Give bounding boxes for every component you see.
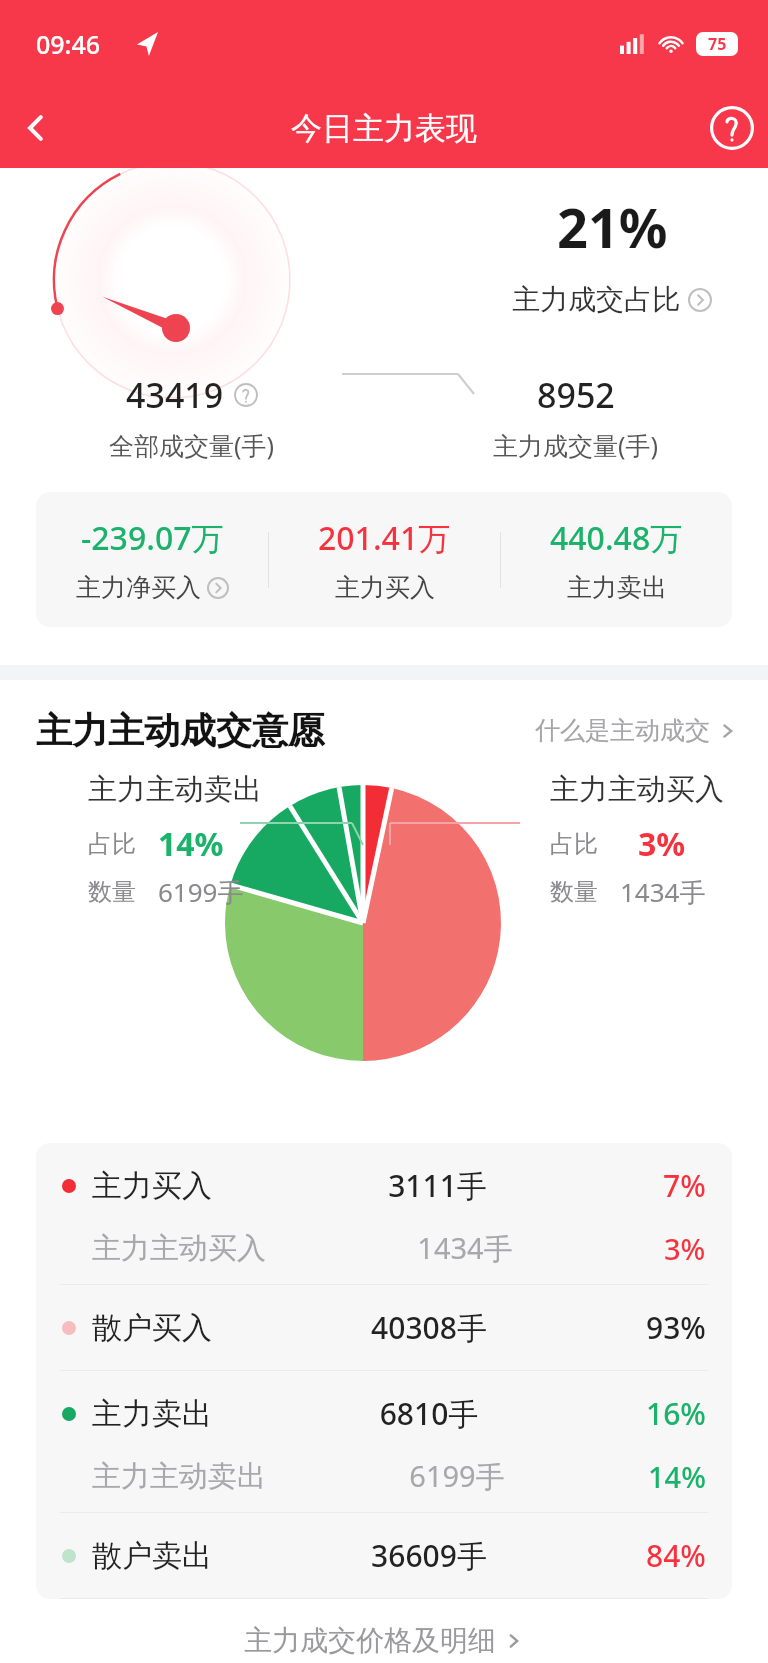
- staticText: 今日主力表现: [291, 109, 477, 148]
- button[interactable]: 主力成交占比: [512, 282, 712, 317]
- staticText: 主力主动买入: [92, 1230, 266, 1267]
- staticText: 7%: [663, 1165, 706, 1206]
- button[interactable]: 散户买入: [36, 1285, 732, 1370]
- staticText: 440.48万: [550, 516, 683, 560]
- staticText: 16%: [646, 1393, 706, 1434]
- staticText: 6199手: [266, 1456, 648, 1496]
- staticText: 全部成交量(手): [109, 428, 275, 462]
- staticText: 散户买入: [92, 1309, 212, 1347]
- staticText: 主力主动成交意愿: [36, 708, 324, 753]
- staticText: 43419: [126, 372, 224, 418]
- button[interactable]: -239.07万: [36, 516, 268, 603]
- staticText: 主力成交价格及明细: [244, 1623, 496, 1658]
- button[interactable]: 主力成交价格及明细: [0, 1623, 768, 1658]
- staticText: 主力买入: [335, 572, 435, 603]
- staticText: 散户卖出: [92, 1537, 212, 1575]
- staticText: 6199手: [158, 874, 244, 910]
- staticText: 主力成交占比: [512, 282, 680, 317]
- button[interactable]: Back: [0, 92, 72, 164]
- staticText: 201.41万: [318, 516, 451, 560]
- staticText: 8952: [537, 372, 615, 418]
- staticText: 数量: [550, 877, 598, 907]
- staticText: 占比: [550, 829, 598, 859]
- staticText: 主力卖出: [567, 572, 667, 603]
- staticText: 1434手: [620, 874, 706, 910]
- staticText: 36609手: [212, 1535, 646, 1576]
- button[interactable]: 散户卖出: [36, 1513, 732, 1598]
- staticText: 主力主动卖出: [88, 771, 262, 808]
- button[interactable]: 主力卖出: [36, 1371, 732, 1456]
- staticText: 3%: [664, 1229, 706, 1268]
- staticText: 主力买入: [92, 1167, 212, 1205]
- staticText: 6810手: [212, 1393, 646, 1434]
- button[interactable]: Help: [696, 92, 768, 164]
- staticText: 3111手: [212, 1165, 663, 1206]
- staticText: 主力主动买入: [550, 771, 724, 808]
- staticText: 21%: [557, 190, 668, 264]
- staticText: 40308手: [212, 1307, 646, 1348]
- staticText: 主力卖出: [92, 1395, 212, 1433]
- staticText: 占比: [88, 829, 136, 859]
- staticText: 什么是主动成交: [535, 715, 710, 746]
- staticText: 75: [708, 33, 727, 55]
- staticText: 1434手: [266, 1228, 664, 1268]
- staticText: -239.07万: [81, 516, 224, 560]
- staticText: 数量: [88, 877, 136, 907]
- button[interactable]: 什么是主动成交: [535, 715, 738, 746]
- staticText: 14%: [648, 1457, 706, 1496]
- staticText: 主力净买入: [76, 572, 201, 603]
- button[interactable]: 主力买入: [36, 1143, 732, 1228]
- staticText: 主力主动卖出: [92, 1458, 266, 1495]
- staticText: 84%: [646, 1535, 706, 1576]
- staticText: 3%: [638, 822, 686, 866]
- staticText: 09:46: [36, 27, 101, 61]
- staticText: 93%: [646, 1307, 706, 1348]
- staticText: 主力成交量(手): [493, 428, 659, 462]
- staticText: 14%: [158, 822, 224, 866]
